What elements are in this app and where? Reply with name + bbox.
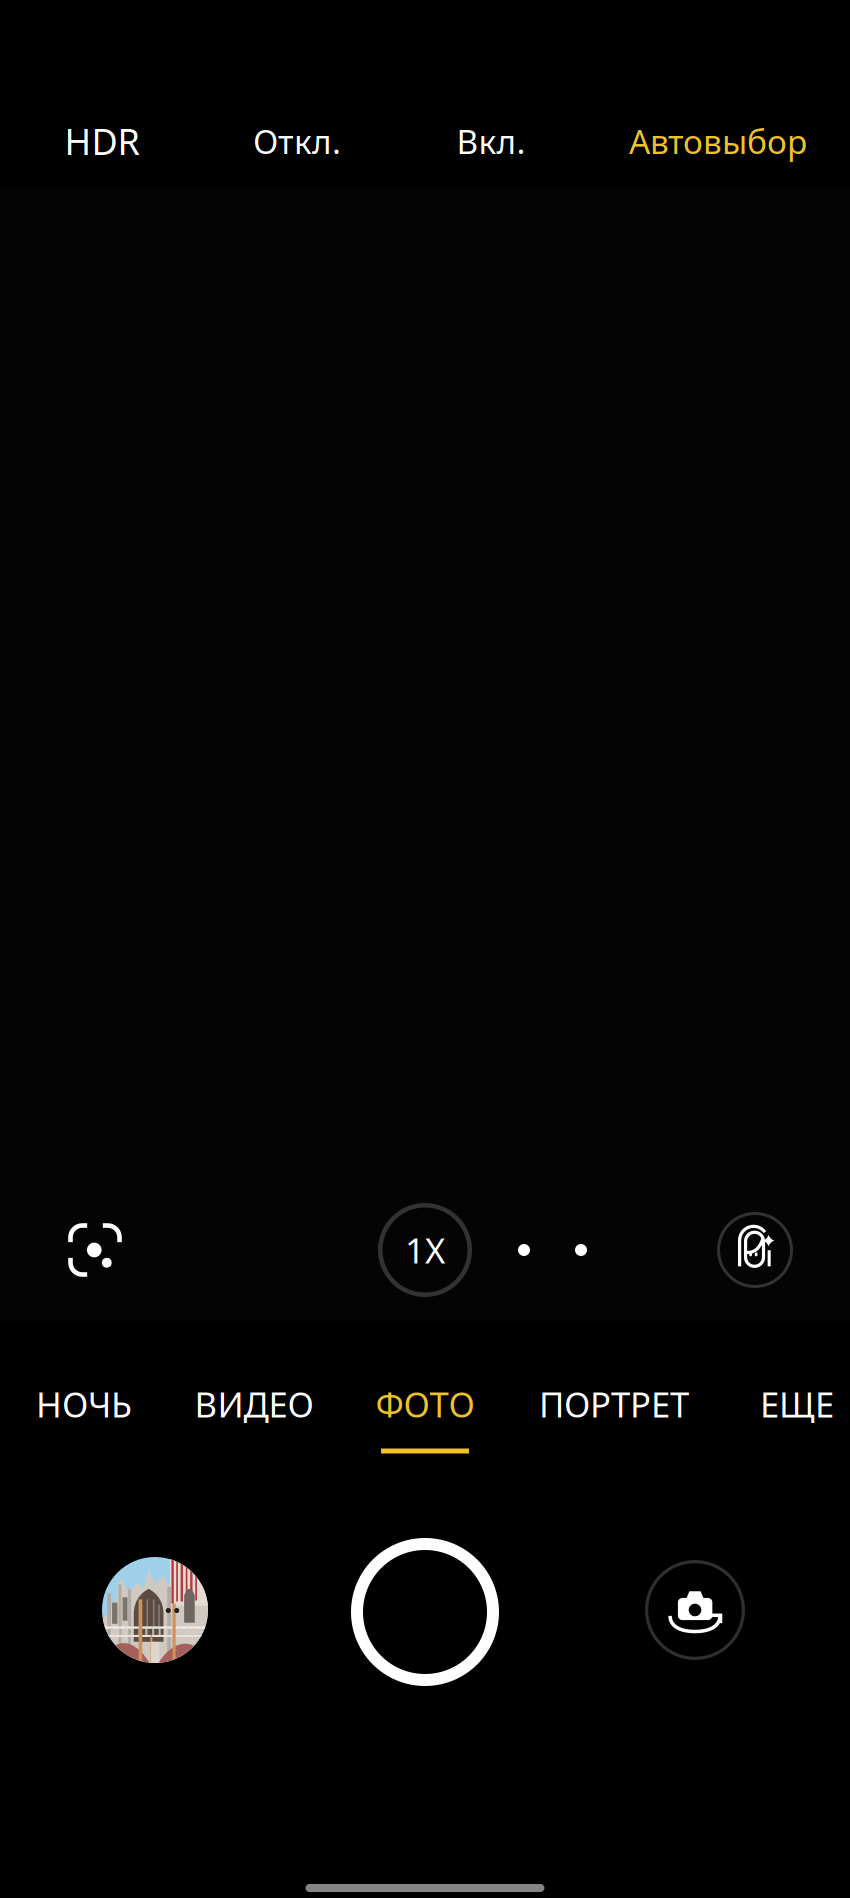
staticText: Автовыбор	[629, 119, 807, 163]
button[interactable]: Zoom 2x	[501, 1227, 547, 1273]
staticText: ВИДЕО	[194, 1381, 313, 1427]
staticText: Вкл.	[456, 119, 525, 163]
button[interactable]: ВИДЕО	[176, 1367, 331, 1441]
button[interactable]: ЕЩЕ	[742, 1367, 850, 1441]
staticText: HDR	[64, 117, 139, 165]
staticText: Откл.	[253, 119, 341, 163]
button[interactable]: НОЧЬ	[18, 1367, 150, 1441]
button[interactable]: Live Text	[53, 1208, 137, 1292]
staticText: ЕЩЕ	[760, 1381, 834, 1427]
button[interactable]: Автовыбор	[613, 109, 823, 173]
button[interactable]: Switch camera	[645, 1560, 745, 1660]
button[interactable]: Last photo	[95, 1550, 215, 1670]
button[interactable]: Вкл.	[434, 109, 547, 173]
button[interactable]: Take photo	[351, 1538, 499, 1686]
button[interactable]: 1X	[378, 1203, 472, 1297]
button[interactable]: Откл.	[231, 109, 363, 173]
staticText: ФОТО	[375, 1381, 474, 1427]
staticText: 1X	[405, 1227, 445, 1273]
button[interactable]: ФОТО	[363, 1346, 487, 1462]
staticText: ПОРТРЕТ	[539, 1381, 689, 1427]
button[interactable]: ПОРТРЕТ	[521, 1367, 707, 1441]
button[interactable]: Zoom 3x	[558, 1227, 604, 1273]
button[interactable]: HDR	[50, 107, 153, 175]
button[interactable]: Beauty	[717, 1212, 793, 1288]
staticText: НОЧЬ	[36, 1381, 132, 1427]
